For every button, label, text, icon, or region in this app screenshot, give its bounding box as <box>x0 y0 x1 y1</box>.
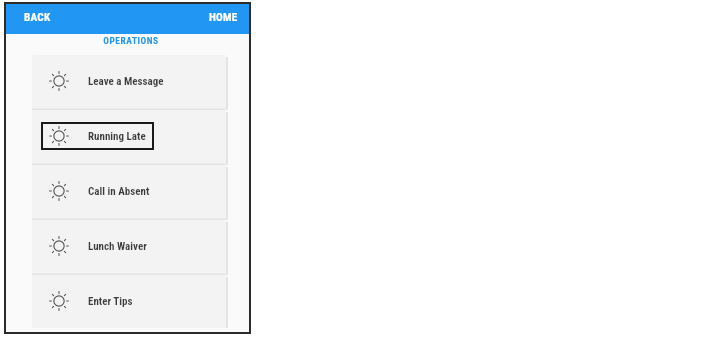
button[interactable]: Running Late <box>32 110 226 163</box>
staticText: BACK <box>24 11 51 24</box>
button[interactable]: BACK <box>4 2 66 34</box>
staticText: OPERATIONS <box>103 35 159 46</box>
button[interactable]: Call in Absent <box>32 165 226 218</box>
button[interactable]: Leave a Message <box>32 55 226 108</box>
staticText: Enter Tips <box>88 295 133 308</box>
staticText: Running Late <box>88 130 146 143</box>
staticText: Leave a Message <box>88 75 164 88</box>
button[interactable]: HOME <box>194 2 251 34</box>
staticText: Call in Absent <box>88 185 150 198</box>
button[interactable]: Enter Tips <box>32 275 226 328</box>
staticText: Lunch Waiver <box>88 240 147 253</box>
button[interactable]: Lunch Waiver <box>32 220 226 273</box>
staticText: HOME <box>209 11 238 24</box>
